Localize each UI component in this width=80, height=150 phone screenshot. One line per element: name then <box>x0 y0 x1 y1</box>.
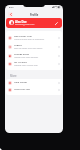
staticText: My Account <box>14 61 27 64</box>
staticText: 9:41 <box>9 6 14 9</box>
button[interactable]: Two-Factor Auth <box>6 33 62 42</box>
staticText: Alex Doe <box>15 20 27 24</box>
staticText: Two-Factor Auth <box>14 35 33 38</box>
button[interactable]: Help Center <box>6 79 62 86</box>
button[interactable]: Edit profile <box>54 21 59 26</box>
staticText: Change Email <box>14 53 30 56</box>
staticText: Update your login address <box>14 56 39 59</box>
staticText: Sign out safely from this device <box>14 47 43 50</box>
button[interactable]: Logout <box>6 42 62 51</box>
button[interactable]: Change Email <box>6 51 62 60</box>
staticText: Profile <box>30 13 39 16</box>
button[interactable]: Alex Doe <box>6 18 62 28</box>
staticText: Help Center <box>14 81 28 84</box>
staticText: Add one more layer of protection <box>14 38 45 41</box>
button[interactable]: Back <box>8 12 13 17</box>
staticText: Manage your current plan <box>14 64 38 67</box>
button[interactable]: My Account <box>6 60 62 68</box>
staticText: About the App <box>14 88 30 91</box>
staticText: alexdoe@mail.com <box>15 23 35 26</box>
staticText: Logout <box>14 44 22 47</box>
staticText: More <box>10 74 17 78</box>
button[interactable]: About the App <box>6 86 62 93</box>
